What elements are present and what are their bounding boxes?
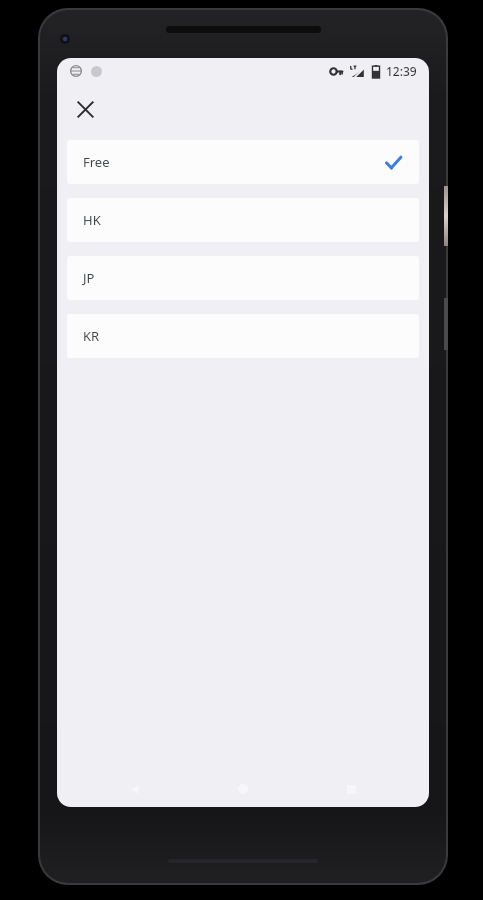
staticText: JP <box>83 269 95 287</box>
staticText: 12:39 <box>386 63 417 79</box>
button[interactable]: KR <box>67 314 419 358</box>
staticText: Free <box>83 153 110 171</box>
button[interactable]: HK <box>67 198 419 242</box>
button[interactable]: Close <box>63 87 107 131</box>
staticText: KR <box>83 327 100 345</box>
staticText: HK <box>83 211 101 229</box>
button[interactable]: JP <box>67 256 419 300</box>
button[interactable]: Free <box>67 140 419 184</box>
